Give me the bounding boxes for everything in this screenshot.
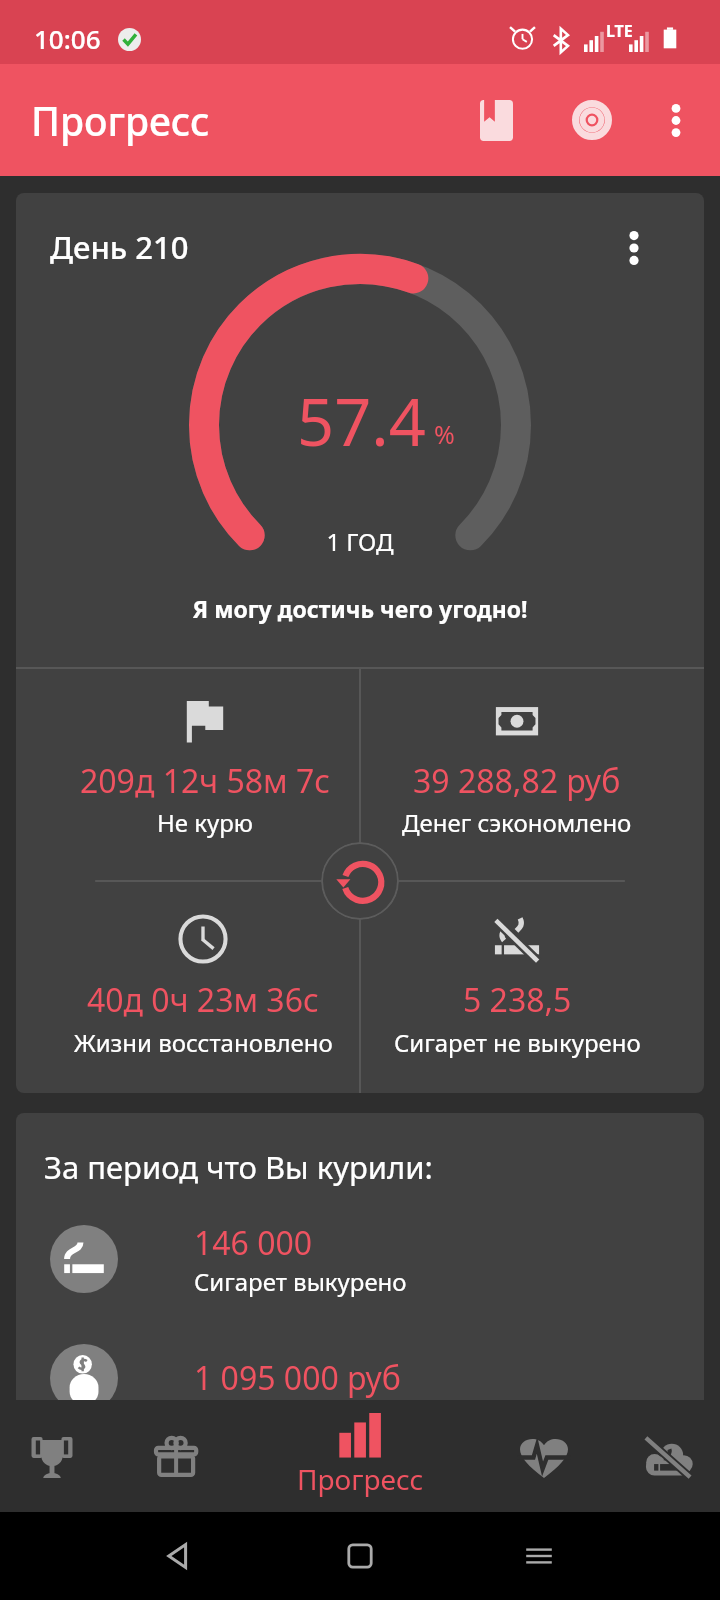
button[interactable]: Reset progress xyxy=(321,842,399,920)
button[interactable]: Card options xyxy=(594,208,674,288)
staticText: LTE xyxy=(606,20,633,42)
staticText: Я могу достичь чего угодно! xyxy=(16,593,704,624)
button[interactable]: 40д 0ч 23м 36с xyxy=(16,881,360,1093)
staticText: 1 095 000 руб xyxy=(194,1356,401,1400)
button[interactable]: More options xyxy=(628,72,720,168)
button[interactable]: Health xyxy=(472,1400,616,1512)
staticText: 1 ГОД xyxy=(16,525,704,558)
staticText: За период что Вы курили: xyxy=(44,1146,433,1188)
staticText: Сигарет выкурено xyxy=(194,1265,407,1298)
button[interactable]: 5 238,5 xyxy=(360,881,704,1093)
button[interactable]: Recent apps xyxy=(507,1524,571,1588)
staticText: День 210 xyxy=(50,226,189,268)
button[interactable]: Back xyxy=(147,1524,211,1588)
staticText: Прогресс xyxy=(31,94,210,147)
staticText: 5 238,5 xyxy=(463,978,572,1022)
staticText: Жизни восстановлено xyxy=(74,1026,333,1059)
staticText: Денег сэкономлено xyxy=(402,806,632,839)
button[interactable]: Bookmarks xyxy=(448,72,544,168)
button[interactable]: 209д 12ч 58м 7с xyxy=(16,669,360,881)
button[interactable]: Smoke free xyxy=(616,1400,720,1512)
staticText: Не курю xyxy=(157,806,254,839)
button[interactable]: Home xyxy=(328,1524,392,1588)
button[interactable]: Прогресс xyxy=(248,1400,472,1512)
button[interactable]: 39 288,82 руб xyxy=(360,669,704,881)
button[interactable]: 1 095 000 руб xyxy=(16,1338,704,1413)
staticText: Прогресс xyxy=(297,1460,424,1498)
button[interactable]: Goal xyxy=(544,72,640,168)
button[interactable]: Achievements xyxy=(0,1400,104,1512)
staticText: 10:06 xyxy=(34,21,101,56)
button[interactable]: 146 000 xyxy=(16,1219,704,1299)
staticText: 40д 0ч 23м 36с xyxy=(87,978,319,1022)
staticText: 146 000 xyxy=(194,1221,313,1265)
staticText: % xyxy=(434,417,455,451)
staticText: 209д 12ч 58м 7с xyxy=(80,759,331,803)
staticText: 57.4 xyxy=(297,377,426,466)
button[interactable]: Rewards xyxy=(104,1400,248,1512)
staticText: Сигарет не выкурено xyxy=(394,1026,641,1059)
staticText: 39 288,82 руб xyxy=(413,759,621,803)
